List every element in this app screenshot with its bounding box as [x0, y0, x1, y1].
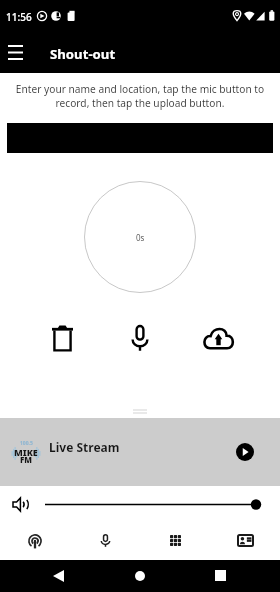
button[interactable]: Apps [140, 521, 210, 560]
button[interactable]: Record [70, 521, 140, 560]
button[interactable]: Play [236, 443, 254, 461]
button[interactable]: Home [135, 571, 163, 592]
staticText: Enter your name and location, tap the mi… [8, 82, 272, 110]
staticText: Shout-out [50, 45, 116, 63]
staticText: 11:56 [6, 10, 32, 24]
staticText: 100.5 [20, 440, 33, 447]
staticText: Live Stream [49, 439, 120, 455]
button[interactable]: Menu [2, 39, 28, 65]
staticText: MIKE [14, 446, 38, 458]
button[interactable]: Recent apps [215, 570, 243, 592]
button[interactable]: Record [101, 316, 179, 360]
button[interactable]: Upload [179, 316, 257, 360]
button[interactable]: Delete recording [23, 316, 101, 360]
staticText: FM [20, 454, 33, 464]
button[interactable]: Contact [210, 521, 280, 560]
staticText: 0s [136, 232, 145, 243]
button[interactable]: Back [53, 570, 81, 592]
button[interactable]: Broadcast [0, 521, 70, 560]
button[interactable]: Volume [0, 486, 280, 521]
